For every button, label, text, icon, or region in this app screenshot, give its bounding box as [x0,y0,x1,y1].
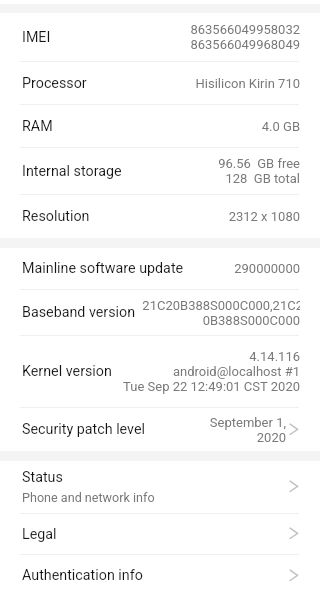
staticText: 290000000 [234,261,300,276]
staticText: Processor [22,75,87,92]
button[interactable]: Internal storage [0,148,320,194]
staticText: Hisilicon Kirin 710 [195,76,300,91]
staticText: 4.0 GB [261,119,300,134]
button[interactable]: Legal [0,514,320,554]
button[interactable]: Kernel version [0,336,320,407]
other: Open Authentication info [289,567,300,585]
staticText: 4.14.116 [249,349,300,364]
staticText: 21C20B388S000C000,21C2 [142,298,300,313]
staticText: 2020 [256,430,286,445]
staticText: 2312 x 1080 [228,209,300,224]
staticText: September 1, [209,415,286,430]
staticText: Tue Sep 22 12:49:01 CST 2020 [123,379,300,394]
button[interactable]: Security patch level [0,408,320,451]
staticText: Status [22,469,63,486]
button[interactable]: Authentication info [0,555,320,596]
button[interactable]: RAM [0,105,320,147]
staticText: 0B388S000C000 [202,313,300,328]
staticText: Resolution [22,208,90,225]
button[interactable]: Resolution [0,195,320,238]
staticText: android@localhost #1 [172,364,300,379]
other: Open Status [289,478,300,496]
button[interactable]: Mainline software update [0,248,320,289]
other: Open Legal [289,525,300,543]
staticText: 96.56 GB free [218,156,300,171]
staticText: 128 GB total [225,171,300,186]
staticText: Phone and network info [22,490,155,505]
staticText: Authentication info [22,567,143,584]
staticText: Legal [22,526,57,543]
button[interactable]: Processor [0,62,320,104]
staticText: Kernel version [22,363,112,380]
staticText: RAM [22,118,53,135]
button[interactable]: IMEI [0,13,320,61]
staticText: 863566049968049 [190,37,300,52]
staticText: 863566049958032 [190,22,300,37]
staticText: Security patch level [22,421,145,438]
staticText: IMEI [22,29,51,46]
staticText: Internal storage [22,163,122,180]
button[interactable]: Baseband version [0,290,320,335]
staticText: Mainline software update [22,260,184,277]
staticText: Baseband version [22,304,136,321]
button[interactable]: Status [0,461,320,513]
